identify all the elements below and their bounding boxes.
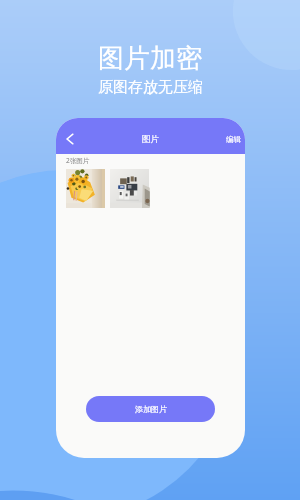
staticText: 图片加密 <box>98 42 202 75</box>
staticText: 编辑 <box>226 135 241 144</box>
staticText: 原图存放无压缩 <box>98 78 203 97</box>
staticText: 2张图片 <box>66 156 90 165</box>
staticText: 图片 <box>142 134 159 145</box>
button[interactable]: Back <box>60 129 80 149</box>
staticText: 添加图片 <box>135 404 167 414</box>
button[interactable]: Photo <box>110 169 149 208</box>
button[interactable]: 编辑 <box>220 129 245 150</box>
button[interactable]: Photo <box>66 169 105 208</box>
button[interactable]: 添加图片 <box>86 396 215 422</box>
